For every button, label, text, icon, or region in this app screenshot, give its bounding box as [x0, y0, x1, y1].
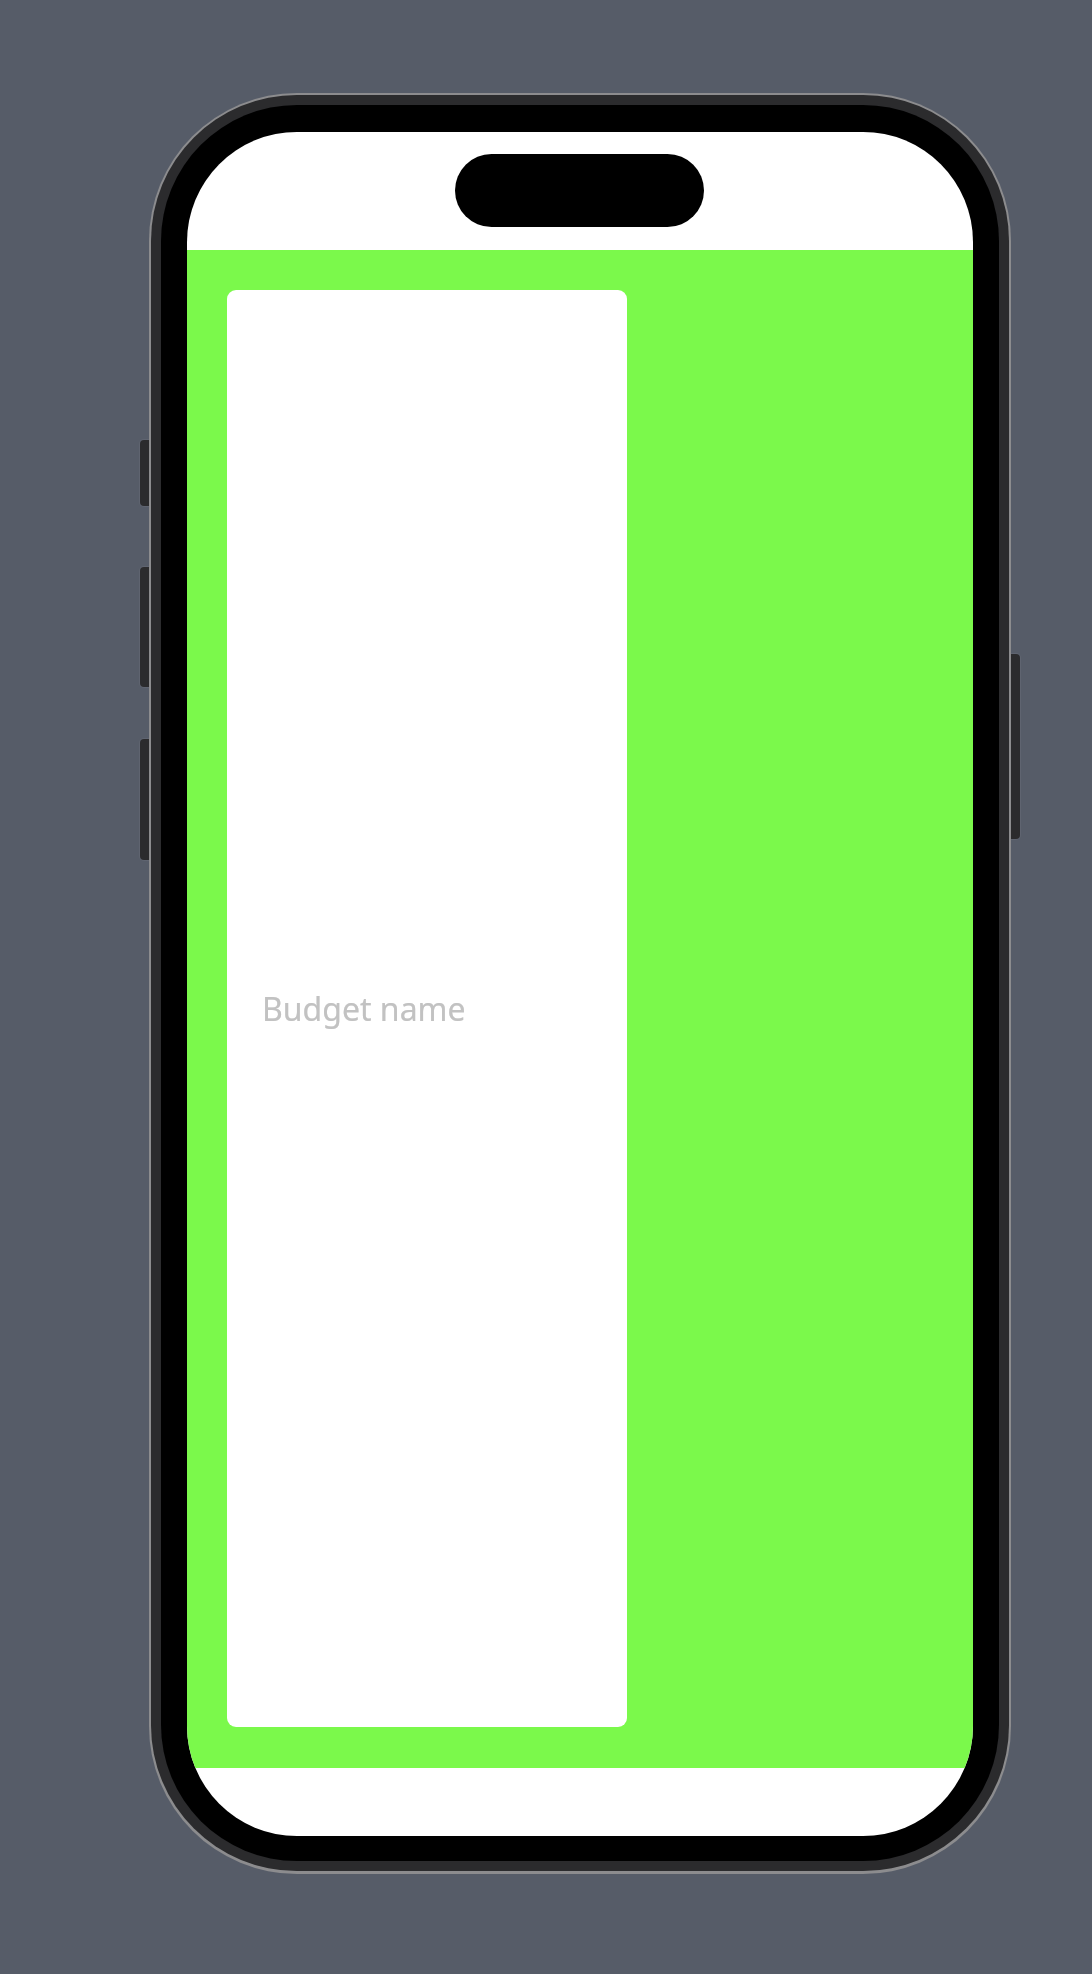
- button[interactable]: Budget name: [227, 290, 627, 1727]
- button[interactable]: Power: [1009, 653, 1021, 840]
- button[interactable]: Volume up: [139, 566, 151, 688]
- staticText: Budget name: [262, 987, 466, 1031]
- button[interactable]: Volume down: [139, 738, 151, 861]
- button[interactable]: Silent mode switch: [139, 439, 151, 507]
- other: Dynamic Island: [455, 154, 704, 227]
